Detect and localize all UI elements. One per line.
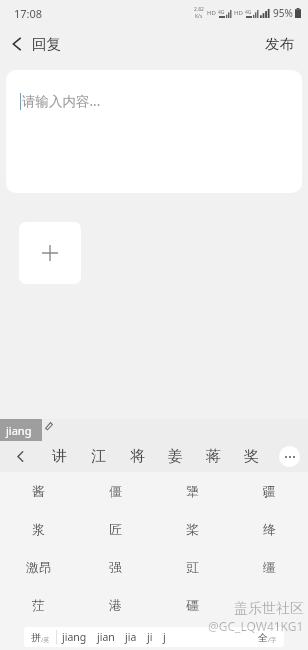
- button[interactable]: Add image: [19, 222, 81, 284]
- staticText: 礓: [186, 597, 199, 613]
- staticText: 强: [109, 559, 122, 575]
- button[interactable]: 疆: [231, 472, 308, 510]
- button[interactable]: [231, 586, 308, 624]
- staticText: 疆: [263, 483, 276, 499]
- button[interactable]: 犟: [154, 472, 231, 510]
- staticText: 蒋: [206, 447, 221, 466]
- button[interactable]: 僵: [77, 472, 154, 510]
- button[interactable]: More candidates: [270, 441, 308, 472]
- other: Back: [11, 36, 23, 52]
- staticText: 姜: [168, 447, 183, 466]
- button[interactable]: 讲: [40, 441, 79, 472]
- staticText: 发布: [265, 35, 294, 53]
- button[interactable]: 酱: [0, 472, 77, 510]
- button[interactable]: 港: [77, 586, 154, 624]
- button[interactable]: jia: [125, 630, 137, 644]
- button[interactable]: 拼: [24, 627, 56, 647]
- staticText: 4G: [218, 9, 225, 16]
- button[interactable]: 奖: [232, 441, 270, 472]
- button[interactable]: 豇: [154, 548, 231, 586]
- button[interactable]: ji: [147, 630, 153, 644]
- staticText: 僵: [109, 483, 122, 499]
- staticText: 港: [109, 597, 122, 613]
- staticText: 95%: [273, 6, 293, 20]
- button[interactable]: 茳: [0, 586, 77, 624]
- staticText: 豇: [186, 559, 199, 575]
- staticText: 江: [91, 447, 106, 466]
- staticText: /英: [41, 636, 50, 644]
- staticText: 桨: [186, 521, 199, 537]
- button[interactable]: jian: [97, 630, 115, 644]
- staticText: @GC_LQW41KG1: [208, 618, 304, 634]
- button[interactable]: Previous page: [0, 441, 40, 472]
- button[interactable]: 姜: [156, 441, 194, 472]
- staticText: 茳: [32, 597, 45, 613]
- staticText: jiang: [62, 630, 87, 644]
- staticText: 4G: [245, 9, 252, 16]
- button[interactable]: 激昂: [0, 548, 77, 586]
- button[interactable]: 强: [77, 548, 154, 586]
- staticText: 全: [258, 631, 268, 644]
- staticText: 盖乐世社区: [234, 600, 304, 618]
- button[interactable]: 发布: [251, 29, 308, 59]
- staticText: 将: [130, 447, 145, 466]
- staticText: K/s: [195, 13, 203, 20]
- button[interactable]: 蒋: [194, 441, 232, 472]
- staticText: 酱: [32, 483, 45, 499]
- button[interactable]: jiang: [0, 419, 42, 441]
- staticText: 讲: [52, 447, 67, 466]
- button[interactable]: 绛: [231, 510, 308, 548]
- button[interactable]: 将: [118, 441, 156, 472]
- button[interactable]: 匠: [77, 510, 154, 548]
- button[interactable]: Back: [0, 30, 69, 58]
- staticText: 2.82: [194, 6, 204, 13]
- staticText: jian: [97, 630, 115, 644]
- button[interactable]: jiang: [62, 630, 87, 644]
- staticText: 犟: [186, 483, 199, 499]
- button[interactable]: 桨: [154, 510, 231, 548]
- staticText: /字: [268, 636, 277, 644]
- staticText: 浆: [32, 521, 45, 537]
- other: Edit pinyin: [44, 421, 53, 430]
- staticText: jiang: [6, 423, 32, 438]
- button[interactable]: 礓: [154, 586, 231, 624]
- staticText: 请输入内容...: [22, 92, 101, 110]
- staticText: 缰: [263, 559, 276, 575]
- button[interactable]: 请输入内容...: [6, 70, 302, 193]
- button[interactable]: j: [163, 630, 166, 644]
- button[interactable]: 浆: [0, 510, 77, 548]
- staticText: j: [163, 630, 166, 644]
- button[interactable]: 缰: [231, 548, 308, 586]
- staticText: HD: [207, 9, 216, 17]
- staticText: 拼: [31, 631, 41, 644]
- staticText: 匠: [109, 521, 122, 537]
- staticText: 绛: [263, 521, 276, 537]
- staticText: 奖: [244, 447, 259, 466]
- staticText: jia: [125, 630, 137, 644]
- button[interactable]: 江: [79, 441, 118, 472]
- staticText: 激昂: [26, 559, 52, 575]
- staticText: ji: [147, 630, 153, 644]
- staticText: 17:08: [14, 6, 43, 21]
- staticText: HD: [234, 9, 243, 17]
- staticText: 回复: [32, 35, 61, 53]
- button[interactable]: 全: [250, 627, 284, 647]
